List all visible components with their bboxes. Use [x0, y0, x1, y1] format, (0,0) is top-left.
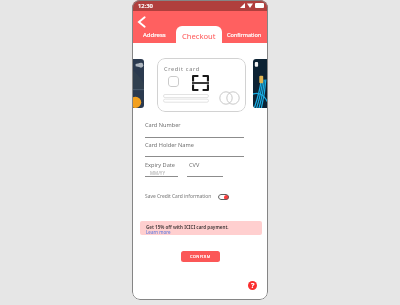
- staticText: Get 15% off with ICICI card payment.: [146, 224, 229, 230]
- button[interactable]: Confirmation: [222, 26, 268, 43]
- staticText: Card Holder Name: [145, 141, 194, 149]
- staticText: Learn more: [146, 229, 171, 235]
- staticText: 12:30: [138, 2, 153, 10]
- staticText: Address: [143, 31, 166, 39]
- button[interactable]: Credit card: [157, 58, 246, 112]
- button[interactable]: Next card: [253, 59, 268, 108]
- staticText: Credit card: [164, 65, 200, 72]
- staticText: CONFIRM: [190, 254, 211, 259]
- button[interactable]: Previous card: [132, 59, 144, 108]
- staticText: MM/YY: [150, 170, 165, 176]
- button[interactable]: Help: [248, 281, 257, 290]
- staticText: Save Credit Card information: [145, 193, 212, 200]
- staticText: ?: [251, 281, 255, 290]
- staticText: Card Number: [145, 121, 181, 129]
- button[interactable]: Back: [135, 15, 149, 29]
- button[interactable]: CONFIRM: [181, 251, 220, 262]
- button[interactable]: Address: [132, 26, 176, 43]
- staticText: Confirmation: [227, 31, 262, 38]
- button[interactable]: Get 15% off with ICICI card payment.: [140, 221, 262, 235]
- button[interactable]: Checkout: [176, 26, 222, 43]
- button[interactable]: Save Credit Card information: [145, 191, 229, 202]
- staticText: CVV: [189, 161, 200, 169]
- staticText: Checkout: [182, 31, 216, 41]
- staticText: Expiry Date: [145, 161, 175, 169]
